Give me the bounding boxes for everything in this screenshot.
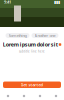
- staticText: Lorem ipsum dolor sit: [3, 41, 58, 48]
- button[interactable]: Another one: [31, 33, 58, 38]
- staticText: Get started: [20, 82, 43, 87]
- staticText: Another one: [34, 33, 55, 38]
- button[interactable]: Tab: [48, 92, 64, 100]
- staticText: subtitle line here: [19, 50, 45, 53]
- staticText: 9:41: [4, 0, 11, 5]
- button[interactable]: Tab: [16, 92, 32, 100]
- button[interactable]: Tab: [0, 92, 16, 100]
- staticText: Something: [8, 33, 26, 38]
- button[interactable]: Something: [5, 33, 29, 38]
- staticText: ▮▮▮: [54, 0, 60, 4]
- button[interactable]: Get started: [3, 81, 61, 88]
- button[interactable]: Tab: [32, 92, 48, 100]
